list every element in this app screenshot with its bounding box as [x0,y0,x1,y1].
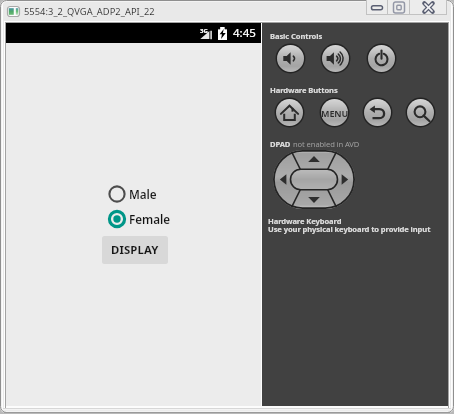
button[interactable]: Power [366,43,397,74]
staticText: Hardware Buttons [270,85,338,95]
button[interactable]: Volume down [275,43,306,74]
staticText: Hardware Keyboard [268,216,342,226]
staticText: Basic Controls [270,31,323,41]
staticText: Male [129,186,157,202]
button[interactable]: Minimize [366,0,388,15]
button[interactable]: Close [410,0,447,15]
button[interactable]: Male [107,182,157,206]
button[interactable]: Home [274,97,305,128]
button[interactable]: Maximize [388,0,410,15]
button[interactable]: Menu [319,97,350,128]
staticText: Use your physical keyboard to provide in… [268,224,431,234]
button[interactable]: Back [362,97,393,128]
staticText: 3G [200,27,208,35]
button[interactable]: DISPLAY [102,236,168,264]
button[interactable]: Search [405,97,436,128]
staticText: MENU [321,107,349,119]
button[interactable]: D-pad [273,150,355,209]
staticText: 4:45 [233,25,256,41]
button[interactable]: Volume up [320,43,351,74]
staticText: 5554:3_2_QVGA_ADP2_API_22 [24,5,155,18]
staticText: Female [129,211,171,227]
staticText: not enabled in AVD [293,139,360,149]
staticText: DPAD [270,139,293,149]
staticText: DISPLAY [111,242,159,258]
button[interactable]: Female [107,207,171,231]
